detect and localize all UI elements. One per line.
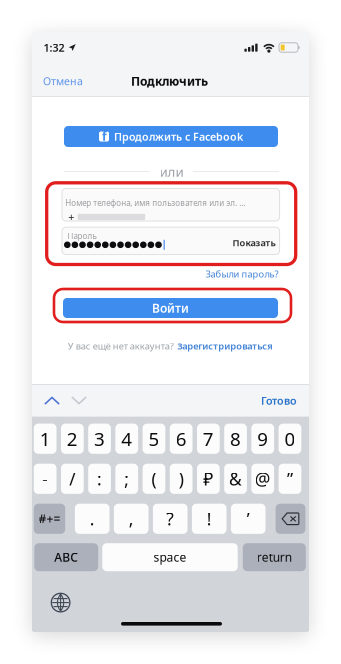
button[interactable]: 6	[170, 424, 192, 454]
staticText: Номер телефона, имя пользователя или эл.…	[65, 198, 245, 208]
button[interactable]: 4	[115, 424, 138, 454]
button[interactable]: Показать	[206, 233, 276, 253]
button[interactable]: Next field	[63, 384, 94, 416]
button[interactable]: 5	[143, 424, 165, 454]
staticText: 9	[257, 426, 268, 451]
staticText: 4	[121, 426, 132, 451]
staticText: Показать	[233, 236, 276, 249]
staticText: (	[151, 467, 156, 490]
staticText: ’	[247, 507, 250, 530]
button[interactable]: ₽	[197, 464, 220, 494]
staticText: 1	[40, 426, 51, 451]
button[interactable]: return	[243, 543, 306, 571]
button[interactable]: 7	[197, 424, 220, 454]
button[interactable]: Войти	[63, 298, 278, 318]
staticText: ?	[166, 507, 174, 530]
button[interactable]: ”	[279, 464, 301, 494]
button[interactable]: .	[75, 504, 109, 534]
button[interactable]: Previous field	[36, 384, 67, 416]
staticText: 8	[230, 426, 241, 451]
staticText: return	[257, 549, 292, 565]
button[interactable]: Забыли пароль?	[205, 268, 278, 280]
button[interactable]: ;	[115, 464, 138, 494]
staticText: -	[42, 467, 48, 490]
staticText: Забыли пароль?	[205, 268, 278, 280]
staticText: ₽	[203, 467, 213, 490]
staticText: 1:32	[43, 40, 64, 55]
button[interactable]: )	[170, 464, 192, 494]
staticText: &	[229, 467, 242, 490]
button[interactable]: 8	[224, 424, 247, 454]
staticText: 5	[148, 426, 159, 451]
button[interactable]: 1	[34, 424, 56, 454]
button[interactable]: 9	[251, 424, 274, 454]
staticText: У вас ещё нет аккаунта?	[68, 340, 174, 352]
button[interactable]: 2	[61, 424, 84, 454]
button[interactable]: Отмена	[36, 69, 90, 93]
staticText: 0	[284, 426, 295, 451]
button[interactable]: /	[61, 464, 84, 494]
staticText: .	[90, 507, 95, 530]
staticText: 2	[67, 426, 78, 451]
button[interactable]: ?	[153, 504, 187, 534]
staticText: !	[207, 507, 212, 530]
button[interactable]: (	[143, 464, 165, 494]
staticText: space	[153, 549, 186, 565]
staticText: )	[179, 467, 184, 490]
button[interactable]: ’	[231, 504, 265, 534]
staticText: Войти	[152, 300, 189, 316]
button[interactable]: f	[64, 126, 278, 147]
button[interactable]: ,	[114, 504, 148, 534]
staticText: Подключить	[131, 73, 208, 89]
staticText: /	[69, 467, 75, 490]
staticText: Готово	[261, 393, 297, 408]
staticText: ABC	[54, 549, 78, 565]
button[interactable]: :	[88, 464, 111, 494]
button[interactable]: #+=	[34, 504, 65, 534]
staticText: Зарегистрироваться	[177, 340, 273, 352]
button[interactable]: 3	[88, 424, 111, 454]
button[interactable]: Готово	[241, 384, 297, 416]
staticText: ”	[287, 467, 293, 490]
staticText: #+=	[38, 511, 60, 527]
staticText: :	[97, 467, 102, 490]
button[interactable]: !	[192, 504, 226, 534]
button[interactable]: space	[102, 543, 238, 571]
button[interactable]: ABC	[34, 543, 98, 571]
staticText: Пароль	[67, 230, 96, 241]
button[interactable]: @	[251, 464, 274, 494]
staticText: 7	[203, 426, 214, 451]
button[interactable]: Зарегистрироваться	[177, 340, 273, 352]
button[interactable]: Change keyboard	[51, 593, 70, 612]
staticText: ;	[124, 467, 129, 490]
button[interactable]: Delete	[276, 504, 305, 534]
staticText: Продолжить с Facebook	[114, 129, 243, 144]
staticText: 3	[94, 426, 105, 451]
staticText: +	[68, 210, 74, 224]
button[interactable]: &	[224, 464, 247, 494]
button[interactable]: -	[34, 464, 56, 494]
staticText: @	[255, 467, 271, 490]
staticText: ,	[129, 507, 134, 530]
staticText: 6	[176, 426, 187, 451]
staticText: f	[102, 128, 107, 144]
staticText: Отмена	[43, 74, 83, 88]
button[interactable]: 0	[279, 424, 301, 454]
staticText: или	[159, 163, 183, 180]
